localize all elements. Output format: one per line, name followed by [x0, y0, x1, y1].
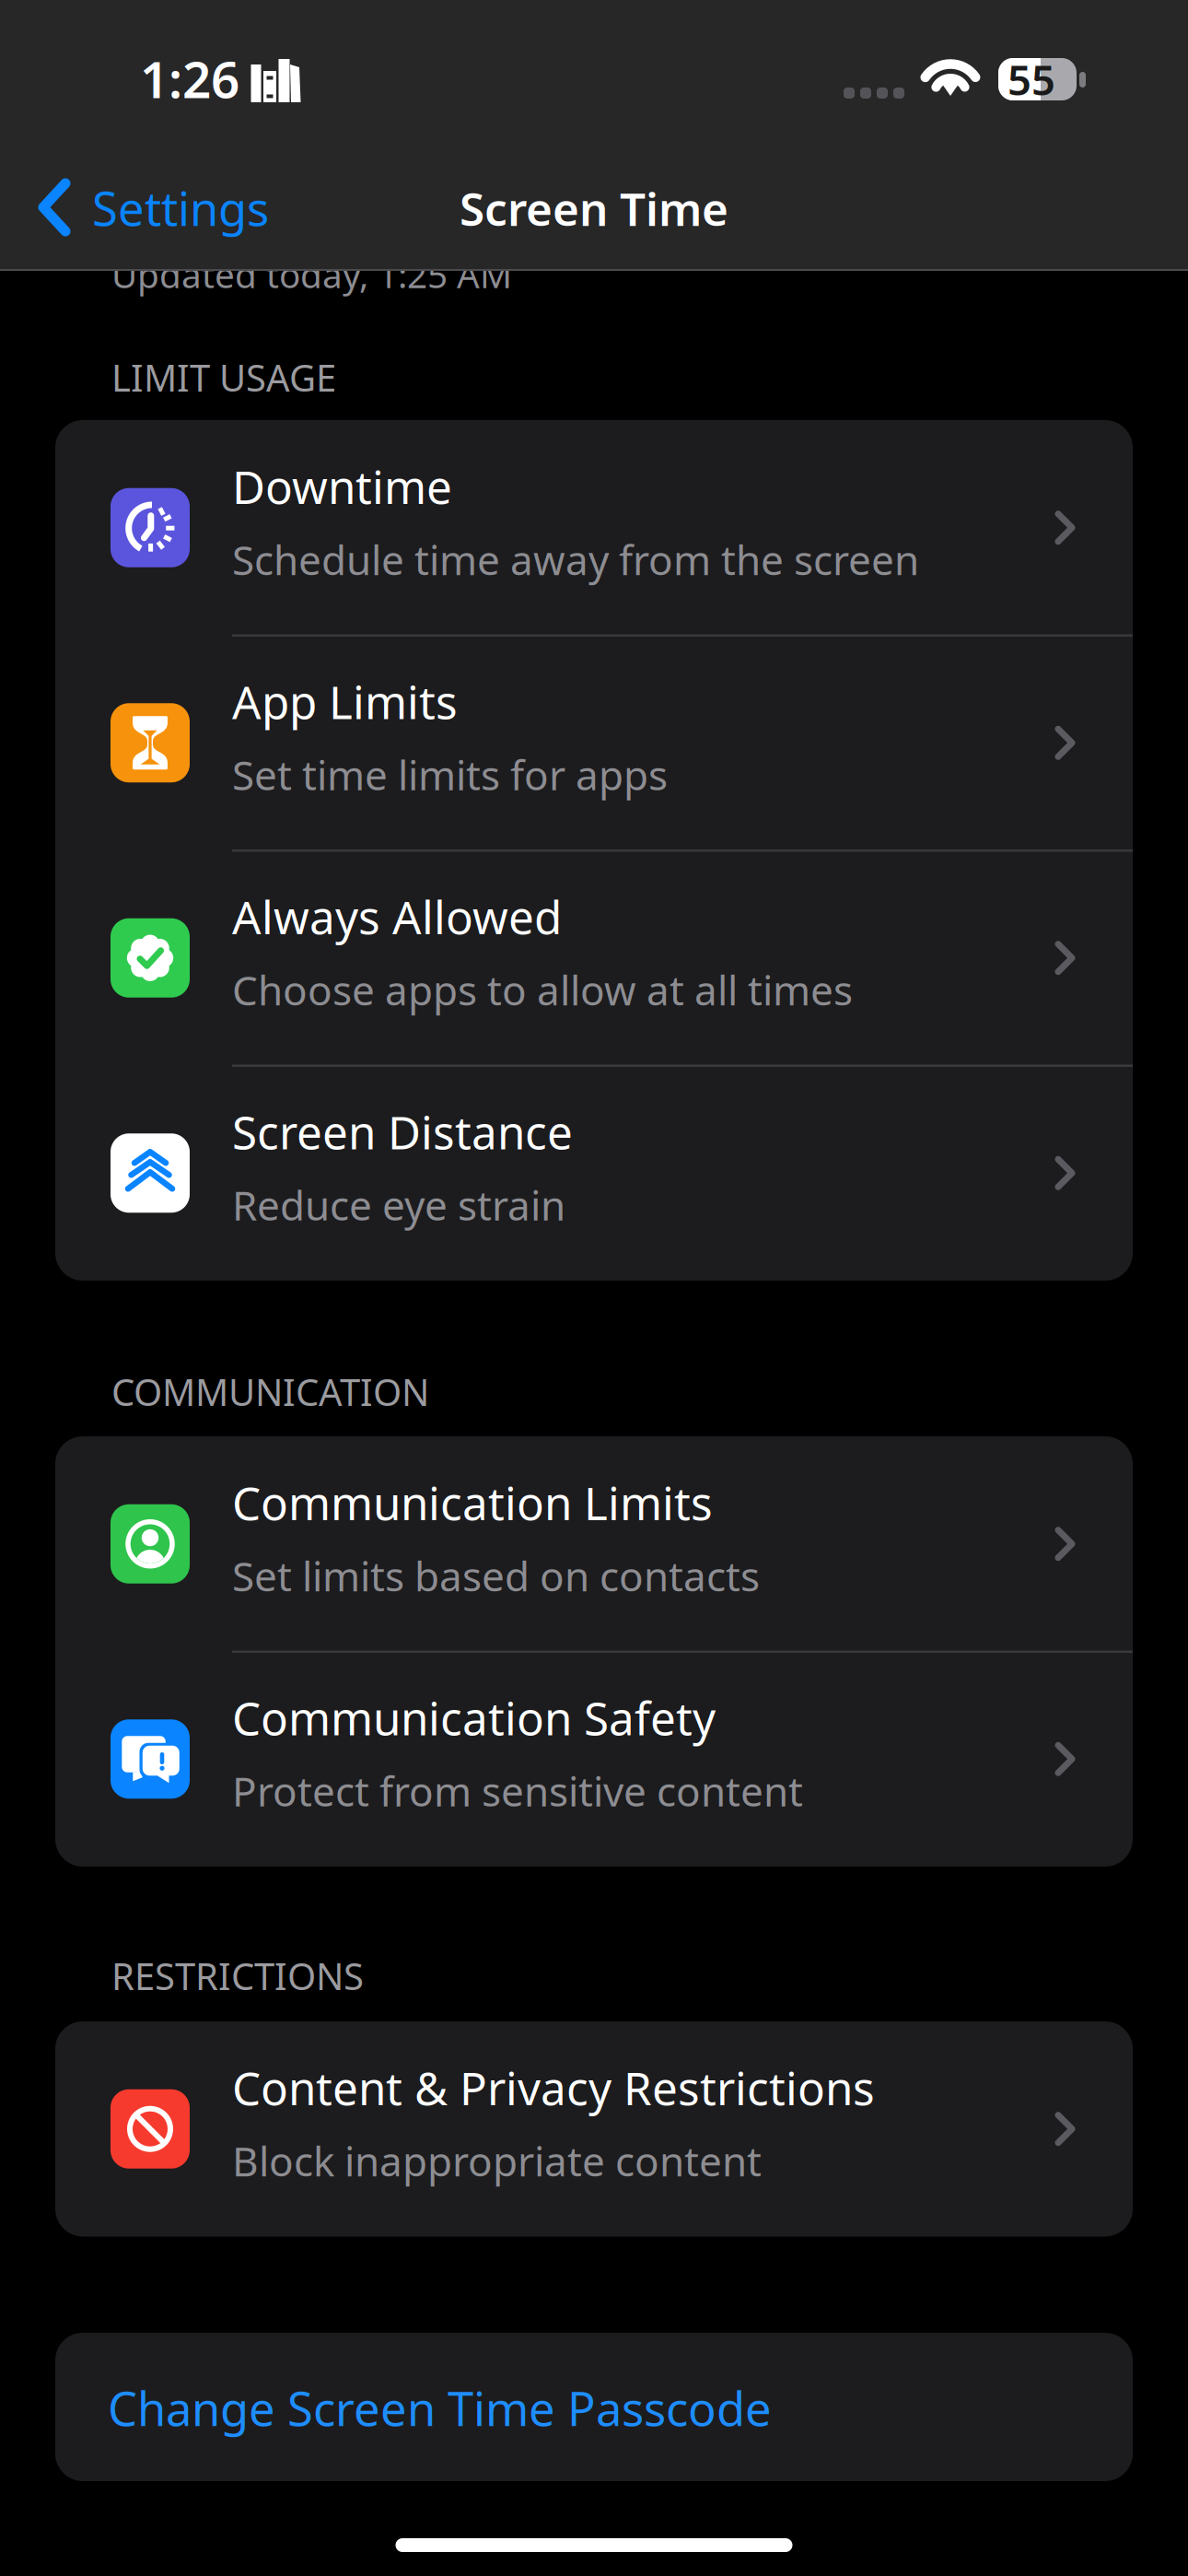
staticText: Communication Limits	[232, 1472, 713, 1533]
staticText: Block inappropriate content	[232, 2134, 762, 2188]
staticText: Set time limits for apps	[232, 748, 668, 801]
staticText: Screen Time	[460, 178, 728, 238]
staticText: COMMUNICATION	[111, 1367, 429, 1416]
staticText: Settings	[92, 177, 269, 239]
button[interactable]: Screen Distance	[55, 1066, 1133, 1281]
staticText: RESTRICTIONS	[111, 1951, 364, 2000]
staticText: Protect from sensitive content	[232, 1764, 803, 1818]
staticText: App Limits	[232, 671, 458, 732]
button[interactable]: Always Allowed	[55, 850, 1133, 1066]
staticText: Updated today, 1:25 AM	[111, 251, 512, 298]
staticText: Communication Safety	[232, 1687, 716, 1748]
staticText: Set limits based on contacts	[232, 1549, 760, 1603]
staticText: Always Allowed	[232, 886, 562, 947]
staticText: Downtime	[232, 456, 452, 516]
button[interactable]: Change Screen Time Passcode	[55, 2333, 1133, 2481]
staticText: Screen Distance	[232, 1101, 573, 1162]
button[interactable]: Communication Limits	[55, 1436, 1133, 1651]
staticText: Choose apps to allow at all times	[232, 963, 853, 1017]
staticText: LIMIT USAGE	[111, 353, 336, 402]
staticText: Reduce eye strain	[232, 1178, 565, 1232]
staticText: Change Screen Time Passcode	[108, 2377, 772, 2439]
button[interactable]: Settings	[0, 155, 276, 271]
button[interactable]: Downtime	[55, 420, 1133, 635]
staticText: Schedule time away from the screen	[232, 533, 919, 586]
staticText: 55	[1007, 52, 1055, 107]
staticText: Content & Privacy Restrictions	[232, 2057, 875, 2118]
button[interactable]: Communication Safety	[55, 1651, 1133, 1867]
button[interactable]: Content & Privacy Restrictions	[55, 2021, 1133, 2236]
staticText: 1:26	[140, 45, 239, 112]
button[interactable]: App Limits	[55, 635, 1133, 850]
